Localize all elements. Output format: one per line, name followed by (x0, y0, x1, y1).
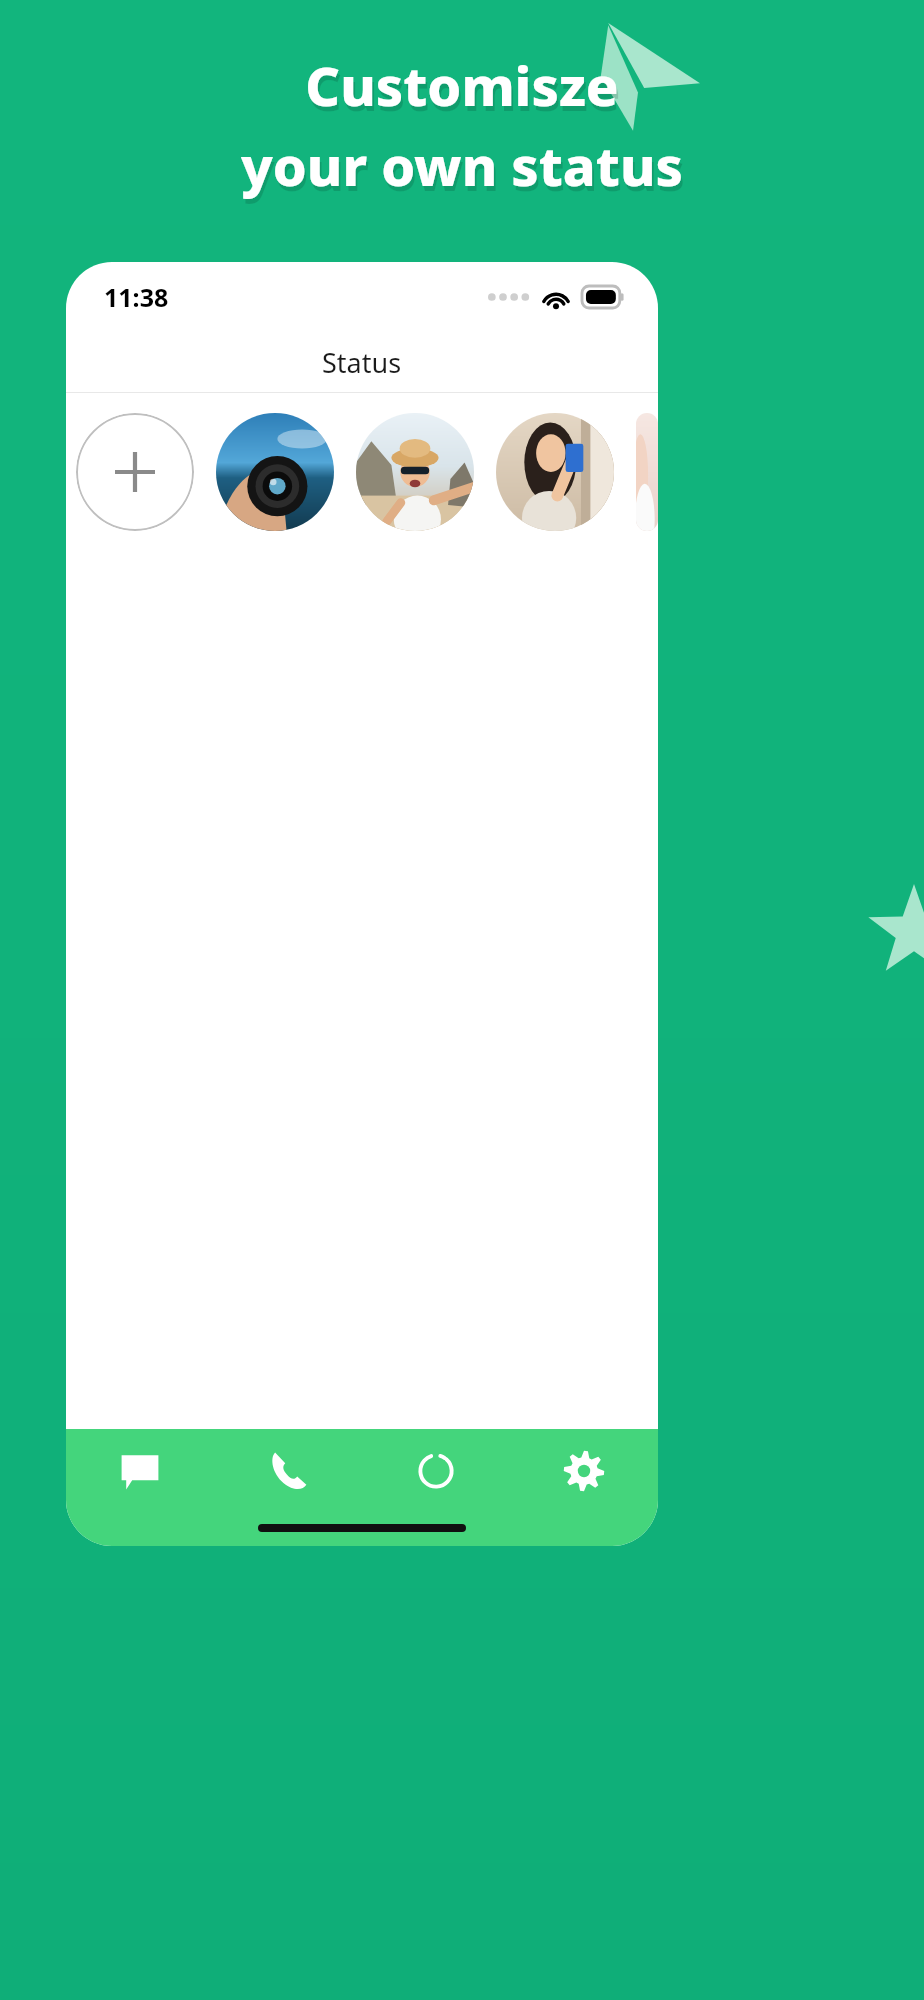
button[interactable]: Chats (66, 1429, 214, 1513)
button[interactable]: Status update (216, 413, 334, 531)
staticText: 11:38 (104, 280, 169, 314)
staticText: Customisze (305, 48, 619, 122)
button[interactable]: Calls (214, 1429, 362, 1513)
button[interactable]: Status update (496, 413, 614, 531)
staticText: Status (322, 344, 402, 381)
staticText: your own status (241, 128, 683, 202)
staticText: Customisze (307, 53, 621, 127)
button[interactable]: Status (362, 1429, 510, 1513)
staticText: your own status (243, 133, 685, 207)
button[interactable]: Add status (76, 413, 194, 531)
button[interactable]: Settings (510, 1429, 658, 1513)
button[interactable]: Status update (356, 413, 474, 531)
button[interactable]: Status update (636, 413, 658, 531)
